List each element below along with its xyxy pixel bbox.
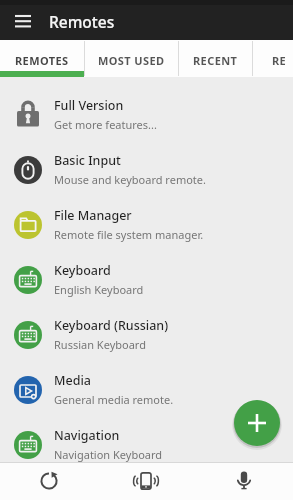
- button[interactable]: RECORD: [253, 40, 293, 77]
- staticText: Russian Keyboard: [54, 337, 146, 352]
- staticText: Navigation Keyboard: [54, 447, 163, 462]
- staticText: REMOTES: [15, 53, 69, 68]
- staticText: General media remote.: [54, 392, 174, 407]
- button[interactable]: Media: [0, 362, 293, 417]
- button[interactable]: Keyboard (Russian): [0, 307, 293, 362]
- staticText: Basic Input: [54, 152, 121, 169]
- staticText: Full Version: [54, 97, 124, 114]
- staticText: RECENT: [193, 53, 238, 68]
- staticText: Keyboard: [54, 262, 111, 279]
- button[interactable]: Basic Input: [0, 142, 293, 197]
- staticText: Media: [54, 372, 91, 389]
- button[interactable]: Navigation: [0, 417, 293, 472]
- staticText: Keyboard (Russian): [54, 317, 169, 334]
- staticText: RECORD: [272, 53, 293, 68]
- button[interactable]: Full Version: [0, 87, 293, 142]
- button[interactable]: RECENT: [179, 40, 252, 77]
- button[interactable]: [0, 2, 46, 40]
- button[interactable]: Keyboard: [0, 252, 293, 307]
- button[interactable]: [195, 462, 293, 500]
- staticText: Navigation: [54, 427, 120, 444]
- staticText: Remote file system manager.: [54, 227, 204, 242]
- staticText: File Manager: [54, 207, 132, 224]
- staticText: Get more features...: [54, 117, 157, 132]
- staticText: Remotes: [49, 11, 115, 32]
- button[interactable]: File Manager: [0, 197, 293, 252]
- button[interactable]: REMOTES: [0, 40, 84, 77]
- button[interactable]: MOST USED: [85, 40, 178, 77]
- button[interactable]: [232, 398, 282, 448]
- button[interactable]: [97, 462, 195, 500]
- staticText: Mouse and keyboard remote.: [54, 172, 206, 187]
- staticText: MOST USED: [98, 53, 165, 68]
- staticText: English Keyboard: [54, 282, 144, 297]
- button[interactable]: [0, 462, 97, 500]
